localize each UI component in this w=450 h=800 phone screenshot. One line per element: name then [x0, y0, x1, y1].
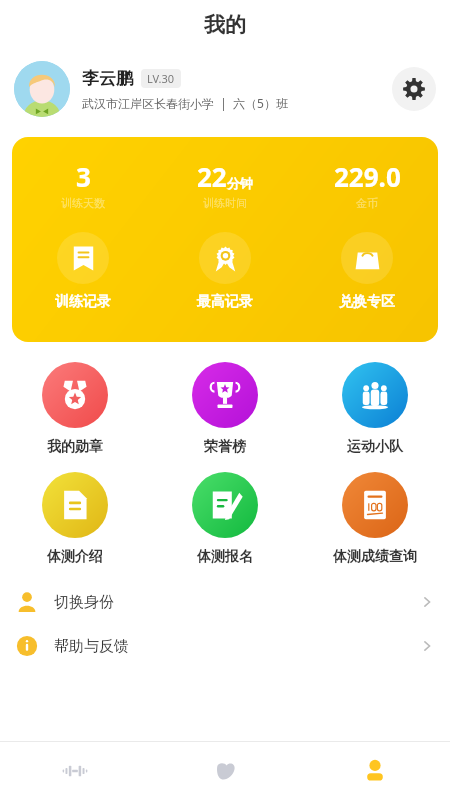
button[interactable]: 体测成绩查询 — [300, 472, 450, 566]
button[interactable]: 运动小队 — [300, 362, 450, 456]
button[interactable]: Workout — [0, 742, 150, 800]
staticText: 我的 — [204, 12, 246, 38]
staticText: 金币 — [356, 196, 378, 210]
button[interactable]: Training — [150, 742, 300, 800]
staticText: 分钟 — [227, 175, 253, 191]
staticText: 李云鹏 — [82, 68, 133, 89]
button[interactable]: Settings — [392, 67, 436, 111]
button[interactable] — [14, 61, 70, 117]
staticText: 体测介绍 — [47, 548, 103, 566]
button[interactable]: 体测报名 — [150, 472, 300, 566]
staticText: 运动小队 — [347, 438, 403, 456]
staticText: LV.30 — [147, 71, 175, 86]
button[interactable]: 体测介绍 — [0, 472, 150, 566]
button[interactable]: 帮助与反馈 — [0, 624, 450, 668]
staticText: 体测成绩查询 — [333, 548, 417, 566]
staticText: 训练记录 — [55, 293, 111, 311]
staticText: 荣誉榜 — [204, 438, 246, 456]
button[interactable]: 我的勋章 — [0, 362, 150, 456]
staticText: 体测报名 — [197, 548, 253, 566]
staticText: 武汉市江岸区长春街小学 | 六（5）班 — [82, 95, 288, 111]
staticText: 3 — [76, 159, 91, 194]
staticText: 22 — [197, 159, 227, 194]
staticText: 229.0 — [334, 159, 401, 194]
staticText: 兑换专区 — [339, 293, 395, 311]
button[interactable]: 兑换专区 — [296, 232, 438, 311]
staticText: 训练时间 — [203, 196, 247, 210]
staticText: 最高记录 — [197, 293, 253, 311]
staticText: 切换身份 — [54, 593, 420, 612]
button[interactable]: 最高记录 — [154, 232, 296, 311]
button[interactable]: 训练记录 — [12, 232, 154, 311]
button[interactable]: 切换身份 — [0, 580, 450, 624]
staticText: 我的勋章 — [47, 438, 103, 456]
button[interactable]: 荣誉榜 — [150, 362, 300, 456]
staticText: 训练天数 — [61, 196, 105, 210]
staticText: 帮助与反馈 — [54, 637, 420, 656]
button[interactable]: Profile — [300, 742, 450, 800]
